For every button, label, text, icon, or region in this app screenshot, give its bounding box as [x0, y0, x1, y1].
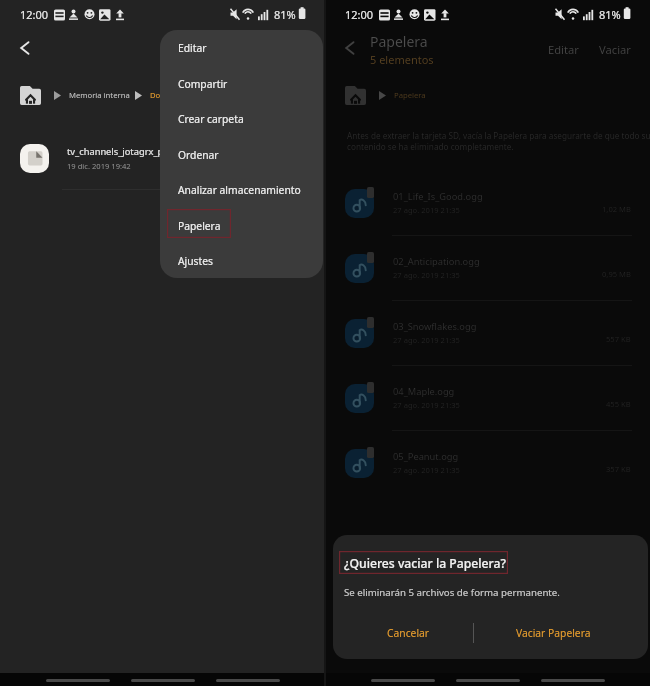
staticText: 27 ago. 2019 21:35	[393, 400, 460, 410]
button[interactable]: Papelera	[160, 208, 323, 244]
staticText: ¿Quieres vaciar la Papelera?	[344, 555, 506, 572]
staticText: 19 dic. 2019 19:42	[67, 161, 131, 171]
staticText: 12:00	[20, 7, 49, 22]
staticText: 27 ago. 2019 21:35	[393, 270, 460, 280]
staticText: 81%	[274, 7, 296, 22]
button[interactable]: 04_Maple.ogg	[325, 365, 650, 430]
staticText: Download	[150, 90, 187, 100]
staticText: 05_Peanut.ogg	[393, 450, 459, 463]
button[interactable]: 01_Life_Is_Good.ogg	[325, 170, 650, 235]
staticText: 27 ago. 2019 21:35	[393, 465, 460, 475]
staticText: Memoria interna	[69, 90, 130, 100]
staticText: Vaciar	[599, 42, 631, 57]
button[interactable]: 03_Snowflakes.ogg	[325, 300, 650, 365]
staticText: Antes de extraer la tarjeta SD, vacía la…	[347, 130, 650, 152]
button[interactable]: Ordenar	[160, 137, 323, 173]
button[interactable]: Crear carpeta	[160, 101, 323, 137]
button[interactable]: Vaciar Papelera	[484, 617, 622, 649]
staticText: Analizar almacenamiento	[178, 183, 301, 197]
button[interactable]: Vaciar	[592, 38, 638, 61]
staticText: 27 ago. 2019 21:35	[393, 205, 460, 215]
staticText: Ajustes	[178, 254, 213, 268]
button[interactable]: Editar	[160, 30, 323, 66]
staticText: 12:00	[345, 7, 374, 22]
button[interactable]: Back	[9, 32, 41, 64]
button[interactable]: Analizar almacenamiento	[160, 172, 323, 208]
staticText: 455 KB	[606, 399, 631, 409]
staticText: 557 KB	[606, 334, 631, 344]
staticText: 03_Snowflakes.ogg	[393, 320, 477, 333]
staticText: Papelera	[394, 90, 426, 100]
staticText: 27 ago. 2019 21:35	[393, 335, 460, 345]
staticText: Se eliminarán 5 archivos de forma perman…	[344, 586, 560, 599]
staticText: Compartir	[178, 77, 228, 91]
button[interactable]: Compartir	[160, 66, 323, 102]
staticText: tv_channels_jotagrx_plus.m3u	[67, 145, 199, 158]
button[interactable]: 02_Anticipation.ogg	[325, 235, 650, 300]
staticText: Papelera	[370, 32, 428, 51]
staticText: 5 elementos	[370, 52, 434, 67]
staticText: 02_Anticipation.ogg	[393, 255, 480, 268]
button[interactable]: Back	[334, 32, 366, 64]
staticText: 0,95 MB	[602, 269, 631, 279]
button[interactable]: 05_Peanut.ogg	[325, 430, 650, 495]
button[interactable]: Cancelar	[341, 617, 475, 649]
staticText: Ordenar	[178, 148, 219, 162]
staticText: Editar	[178, 41, 207, 55]
staticText: 01_Life_Is_Good.ogg	[393, 190, 483, 203]
staticText: Papelera	[178, 219, 221, 233]
button[interactable]: Ajustes	[160, 243, 323, 278]
staticText: 81%	[599, 7, 621, 22]
staticText: Cancelar	[387, 626, 430, 640]
staticText: 04_Maple.ogg	[393, 385, 455, 398]
button[interactable]: tv_channels_jotagrx_plus.m3u	[0, 133, 325, 183]
staticText: Editar	[548, 42, 579, 57]
button[interactable]: Editar	[541, 38, 586, 61]
staticText: 357 KB	[606, 464, 631, 474]
staticText: 1,02 MB	[602, 204, 631, 214]
staticText: Crear carpeta	[178, 112, 244, 126]
staticText: Vaciar Papelera	[516, 626, 591, 640]
